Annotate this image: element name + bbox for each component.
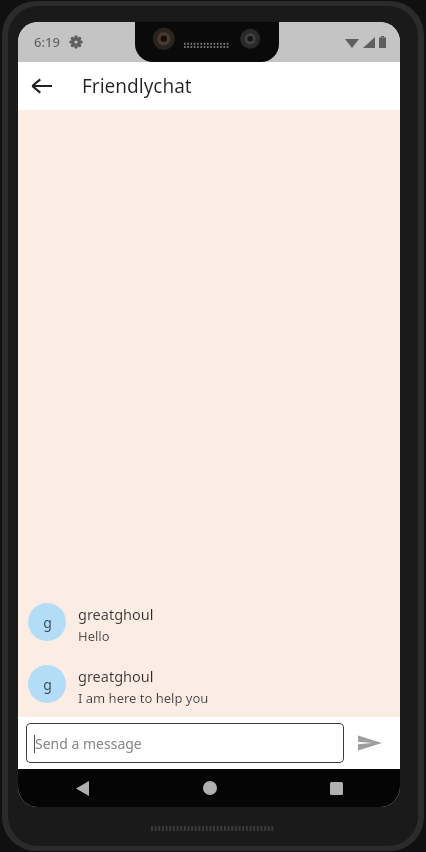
button[interactable]: g [18,661,400,711]
button[interactable]: Send a message [26,723,344,763]
staticText: I am here to help you [78,689,209,707]
staticText: 6:19 [34,33,60,51]
button[interactable]: Back [18,62,66,110]
staticText: g [43,675,52,694]
button[interactable]: Send [344,717,396,769]
staticText: Hello [78,627,110,645]
staticText: Send a message [35,734,142,753]
button[interactable]: Home [146,769,273,807]
staticText: greatghoul [78,604,154,624]
button[interactable]: g [18,599,400,649]
button[interactable]: Recents [273,769,400,807]
staticText: Friendlychat [82,73,192,99]
staticText: greatghoul [78,666,154,686]
staticText: g [43,613,52,632]
button[interactable]: Back [18,769,146,807]
